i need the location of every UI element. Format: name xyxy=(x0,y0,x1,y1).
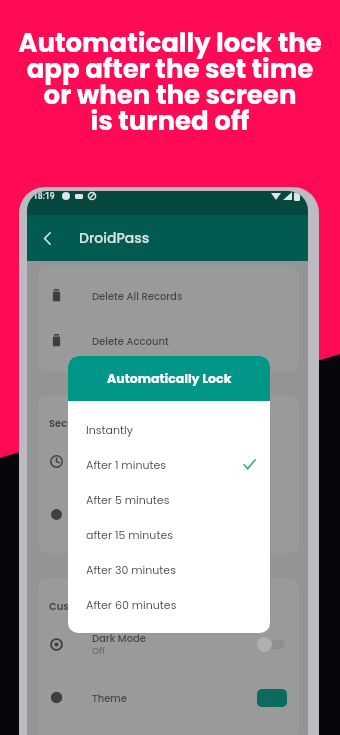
staticText: Dark Mode xyxy=(92,631,146,645)
staticText: After 60 minutes xyxy=(86,597,177,612)
button[interactable]: Instantly xyxy=(68,412,270,447)
button[interactable]: Delete All Records xyxy=(38,273,299,318)
button[interactable]: Theme xyxy=(38,671,299,724)
staticText: Customization xyxy=(49,599,124,613)
staticText: Security xyxy=(49,416,91,430)
staticText: After 30 minutes xyxy=(86,562,176,577)
button[interactable]: after 15 minutes xyxy=(68,517,270,552)
staticText: After 1 minutes xyxy=(92,462,158,475)
staticText: Theme xyxy=(92,691,127,705)
staticText: Automatically Lock xyxy=(107,370,232,387)
staticText: Delete All Records xyxy=(92,289,183,303)
staticText: 18:19 xyxy=(33,191,55,201)
button[interactable]: Dark Mode xyxy=(38,618,299,671)
staticText: Fingerprint xyxy=(92,501,147,515)
staticText: Off xyxy=(92,645,105,658)
staticText: DroidPass xyxy=(79,228,150,248)
staticText: Automatically lock the app after the set… xyxy=(18,25,322,139)
staticText: after 15 minutes xyxy=(86,527,173,542)
staticText: After 1 minutes xyxy=(86,457,167,472)
staticText: After 5 minutes xyxy=(86,492,170,507)
button[interactable]: After 5 minutes xyxy=(68,482,270,517)
button[interactable]: After 1 minutes xyxy=(68,447,270,482)
button[interactable]: After 30 minutes xyxy=(68,552,270,587)
staticText: Delete Account xyxy=(92,334,169,348)
button[interactable]: After 60 minutes xyxy=(68,587,270,622)
button[interactable]: Fingerprint xyxy=(38,488,299,541)
staticText: Automatically Lock xyxy=(92,448,188,462)
staticText: Instantly xyxy=(86,422,133,437)
button[interactable]: Delete Account xyxy=(38,318,299,363)
button[interactable]: Back xyxy=(27,218,67,258)
button[interactable]: Automatically Lock xyxy=(38,435,299,488)
